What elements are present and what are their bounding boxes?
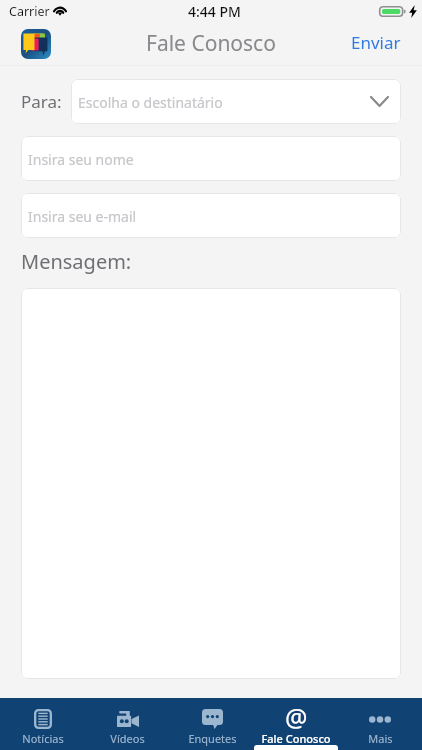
button[interactable]: App icon — [21, 29, 51, 59]
button[interactable]: Escolha o destinatário — [71, 79, 401, 124]
staticText: Vídeos — [110, 731, 145, 746]
staticText: Mensagem: — [21, 248, 132, 275]
button[interactable]: Enviar — [351, 32, 422, 55]
button[interactable]: Enquetes — [170, 698, 254, 750]
staticText: Enquetes — [188, 731, 237, 746]
staticText: Fale Conosco — [146, 29, 276, 58]
button[interactable]: Notícias — [0, 698, 85, 750]
staticText: 4:44 PM — [188, 2, 241, 21]
button[interactable]: Insira seu nome — [21, 136, 401, 181]
staticText: Escolha o destinatário — [78, 93, 223, 112]
button[interactable]: Vídeos — [85, 698, 170, 750]
button[interactable]: @ — [254, 698, 338, 750]
staticText: Insira seu nome — [28, 150, 134, 169]
staticText: Notícias — [22, 731, 64, 746]
button[interactable]: Insira seu e-mail — [21, 193, 401, 238]
staticText: Para: — [21, 90, 62, 113]
staticText: Carrier — [9, 3, 50, 20]
button[interactable]: Mais — [338, 698, 422, 750]
staticText: Mais — [368, 731, 393, 746]
staticText: @ — [285, 700, 308, 734]
staticText: Fale Conosco — [261, 731, 331, 746]
staticText: Enviar — [351, 31, 401, 54]
staticText: Insira seu e-mail — [28, 207, 137, 226]
